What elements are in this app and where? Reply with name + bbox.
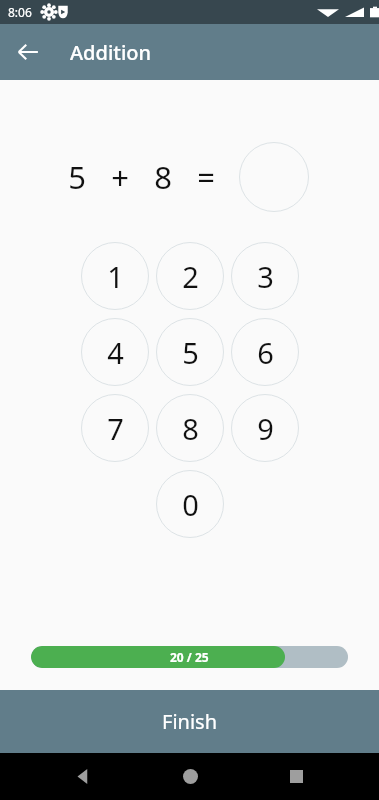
button[interactable]: Back (59, 753, 107, 800)
button[interactable]: 6 (231, 318, 299, 386)
button[interactable]: 0 (156, 470, 224, 538)
button[interactable]: 9 (231, 394, 299, 462)
button[interactable]: Recents (272, 753, 320, 800)
button[interactable]: 2 (156, 242, 224, 310)
button[interactable]: 3 (231, 242, 299, 310)
button[interactable]: Home (166, 753, 214, 800)
staticText: 5 (182, 333, 199, 372)
staticText: 0 (182, 485, 199, 524)
button[interactable]: 8 (156, 394, 224, 462)
staticText: 8 (182, 409, 199, 448)
button[interactable]: 1 (81, 242, 149, 310)
staticText: + (111, 156, 129, 198)
staticText: 6 (257, 333, 274, 372)
staticText: 9 (257, 409, 274, 448)
button[interactable]: Answer (239, 142, 309, 212)
staticText: = (197, 156, 215, 198)
staticText: 5 (68, 156, 86, 198)
staticText: 20 / 25 (170, 649, 209, 665)
staticText: Finish (162, 708, 217, 735)
staticText: 3 (257, 257, 274, 296)
button[interactable]: 7 (81, 394, 149, 462)
button[interactable]: 20 / 25 (31, 646, 348, 668)
staticText: 8 (154, 156, 172, 198)
staticText: 2 (182, 257, 199, 296)
button[interactable]: 5 (156, 318, 224, 386)
staticText: 7 (107, 409, 124, 448)
staticText: 4 (107, 333, 124, 372)
staticText: 1 (107, 257, 124, 296)
button[interactable]: Back (6, 30, 50, 74)
button[interactable]: Finish (0, 690, 379, 753)
button[interactable]: 4 (81, 318, 149, 386)
staticText: 8:06 (8, 4, 32, 20)
staticText: Addition (70, 39, 152, 66)
